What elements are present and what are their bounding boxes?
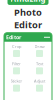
- staticText: Sticker: [10, 78, 22, 84]
- staticText: Draw: [34, 44, 44, 49]
- button[interactable]: Crop: [6, 43, 27, 58]
- staticText: Adjust: [34, 78, 45, 84]
- staticText: Text: [36, 61, 43, 66]
- staticText: Editor: [6, 34, 21, 41]
- button[interactable]: Text: [29, 60, 50, 75]
- staticText: •••: [44, 34, 50, 41]
- staticText: Photo Editor: [14, 6, 42, 31]
- staticText: Crop: [12, 44, 21, 49]
- button[interactable]: Filter: [6, 60, 27, 75]
- staticText: Filter: [12, 61, 21, 66]
- staticText: Amazing: [10, 0, 45, 4]
- button[interactable]: Sticker: [6, 77, 27, 93]
- button[interactable]: Draw: [29, 43, 50, 58]
- button[interactable]: Adjust: [29, 77, 50, 93]
